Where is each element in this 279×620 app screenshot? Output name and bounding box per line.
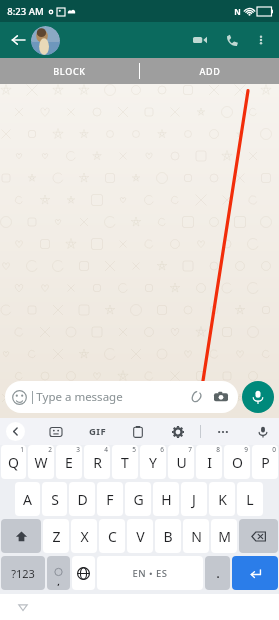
staticText: 5 [132, 445, 136, 454]
staticText: X [80, 527, 89, 546]
staticText: GIF [89, 425, 106, 438]
button[interactable]: J [181, 482, 207, 516]
button[interactable]: L [237, 482, 263, 516]
staticText: C [108, 527, 117, 546]
staticText: 8:23 AM [7, 5, 44, 18]
button[interactable]: I [196, 445, 222, 479]
button[interactable]: Back [14, 598, 32, 616]
button[interactable]: N [183, 519, 209, 553]
staticText: 2 [48, 445, 52, 454]
button[interactable]: W [28, 445, 54, 479]
button[interactable]: S [42, 482, 67, 516]
button[interactable]: Type a message [5, 381, 238, 413]
button[interactable]: Back [6, 28, 30, 52]
staticText: G [133, 490, 144, 509]
staticText: 4 [104, 445, 108, 454]
staticText: H [161, 490, 172, 509]
button[interactable]: B [155, 519, 181, 553]
staticText: T [121, 453, 129, 472]
button[interactable]: V [127, 519, 153, 553]
staticText: R [93, 453, 102, 472]
staticText: K [218, 490, 227, 509]
staticText: , [57, 575, 60, 587]
button[interactable]: M [211, 519, 237, 553]
staticText: S [51, 490, 59, 509]
button[interactable]: D [69, 482, 95, 516]
staticText: F [106, 490, 114, 509]
button[interactable]: Q [1, 445, 26, 479]
button[interactable]: F [97, 482, 123, 516]
button[interactable]: Video call [187, 27, 213, 53]
button[interactable]: Voice message [242, 381, 274, 413]
button[interactable]: X [71, 519, 97, 553]
button[interactable]: U [168, 445, 194, 479]
staticText: BLOCK [53, 65, 86, 77]
button[interactable]: Voice call [219, 27, 245, 53]
staticText: W [34, 453, 48, 472]
staticText: E [65, 453, 73, 472]
button[interactable]: H [153, 482, 179, 516]
staticText: V [136, 527, 145, 546]
staticText: ?123 [11, 566, 35, 581]
button[interactable]: Attach [186, 387, 206, 407]
button[interactable]: Change language [72, 556, 95, 590]
staticText: ADD [199, 65, 221, 77]
staticText: A [23, 490, 32, 509]
staticText: U [176, 453, 187, 472]
button[interactable]: EN • ES [97, 556, 203, 590]
staticText: . [216, 566, 220, 581]
button[interactable]: Settings [168, 422, 188, 442]
button[interactable]: Shift [1, 519, 41, 553]
button[interactable]: Emoji [47, 556, 70, 590]
button[interactable]: Contact photo [31, 26, 60, 55]
button[interactable]: ?123 [1, 556, 45, 590]
button[interactable]: More [213, 422, 233, 442]
button[interactable]: More options [249, 28, 273, 52]
button[interactable]: C [99, 519, 125, 553]
staticText: Y [149, 453, 157, 472]
button[interactable]: GIF [87, 425, 108, 438]
staticText: J [192, 490, 196, 509]
button[interactable]: T [112, 445, 138, 479]
staticText: 7 [188, 445, 192, 454]
staticText: N [191, 527, 202, 546]
button[interactable]: Z [43, 519, 69, 553]
button[interactable]: Y [140, 445, 166, 479]
button[interactable]: ADD [140, 58, 279, 84]
other: Shift [15, 530, 28, 543]
staticText: 0 [272, 445, 276, 454]
button[interactable]: . [205, 556, 230, 590]
staticText: EN • ES [132, 567, 168, 580]
button[interactable]: Enter [232, 556, 278, 590]
staticText: D [77, 490, 88, 509]
staticText: Q [8, 453, 19, 472]
button[interactable]: Clipboard [128, 422, 148, 442]
button[interactable]: P [252, 445, 278, 479]
staticText: 3 [76, 445, 80, 454]
other: Backspace [251, 529, 266, 544]
staticText: Type a message [36, 389, 123, 405]
staticText: M [218, 527, 231, 546]
button[interactable]: G [125, 482, 151, 516]
staticText: 8 [216, 445, 220, 454]
button[interactable]: Stickers [46, 422, 66, 442]
button[interactable]: Voice input [253, 422, 273, 442]
button[interactable]: Backspace [239, 519, 278, 553]
staticText: 1 [20, 445, 24, 454]
staticText: Z [52, 527, 61, 546]
button[interactable]: R [84, 445, 110, 479]
button[interactable]: BLOCK [0, 58, 139, 84]
staticText: P [261, 453, 270, 472]
button[interactable]: A [15, 482, 40, 516]
staticText: B [163, 527, 173, 546]
button[interactable]: O [224, 445, 250, 479]
staticText: 9 [244, 445, 248, 454]
staticText: O [232, 453, 243, 472]
staticText: N [234, 6, 241, 17]
button[interactable]: K [209, 482, 235, 516]
button[interactable]: Expand [6, 422, 25, 441]
staticText: I [207, 453, 212, 472]
staticText: L [246, 490, 254, 509]
button[interactable]: E [56, 445, 82, 479]
button[interactable]: Camera [211, 387, 231, 407]
